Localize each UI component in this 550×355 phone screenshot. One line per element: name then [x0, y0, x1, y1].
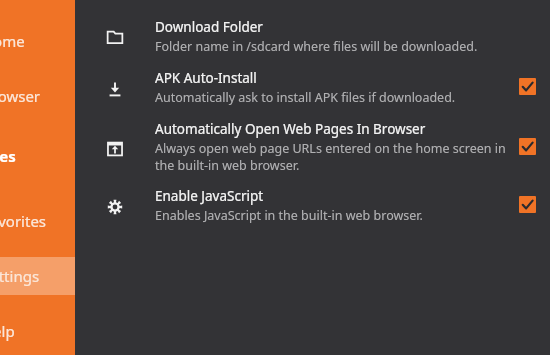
- button[interactable]: Toggle Enable JavaScript: [519, 196, 536, 213]
- staticText: Help: [0, 321, 15, 341]
- staticText: Folder name in /sdcard where files will …: [155, 38, 478, 55]
- button[interactable]: APK auto install: [75, 69, 550, 106]
- staticText: Download Folder: [155, 18, 263, 36]
- other: Enable JavaScript: [107, 199, 123, 215]
- button[interactable]: Help: [0, 312, 75, 350]
- staticText: Automatically ask to install APK files i…: [155, 89, 456, 106]
- staticText: APK Auto-Install: [155, 69, 257, 87]
- other: Download folder: [107, 30, 123, 46]
- button[interactable]: Toggle Automatically Open Web Pages In B…: [519, 138, 536, 155]
- other: Open web pages in browser: [107, 141, 123, 157]
- button[interactable]: Home: [0, 22, 75, 60]
- button[interactable]: Browser: [0, 77, 75, 115]
- button[interactable]: Enable JavaScript: [75, 187, 550, 224]
- staticText: Automatically Open Web Pages In Browser: [155, 120, 426, 138]
- other: APK auto install: [107, 81, 123, 97]
- button[interactable]: Files: [0, 137, 75, 175]
- button[interactable]: Download folder: [75, 18, 550, 55]
- staticText: Enables JavaScript in the built-in web b…: [155, 207, 423, 224]
- staticText: Enable JavaScript: [155, 187, 264, 205]
- staticText: Favorites: [0, 211, 47, 231]
- staticText: Settings: [0, 266, 40, 286]
- button[interactable]: Settings: [0, 257, 75, 295]
- button[interactable]: Favorites: [0, 202, 75, 240]
- staticText: Files: [0, 146, 16, 166]
- button[interactable]: Toggle APK Auto-Install: [519, 78, 536, 95]
- staticText: Always open web page URLs entered on the…: [155, 140, 511, 173]
- button[interactable]: Open web pages in browser: [75, 120, 550, 173]
- staticText: Browser: [0, 86, 41, 106]
- staticText: Home: [0, 31, 25, 51]
